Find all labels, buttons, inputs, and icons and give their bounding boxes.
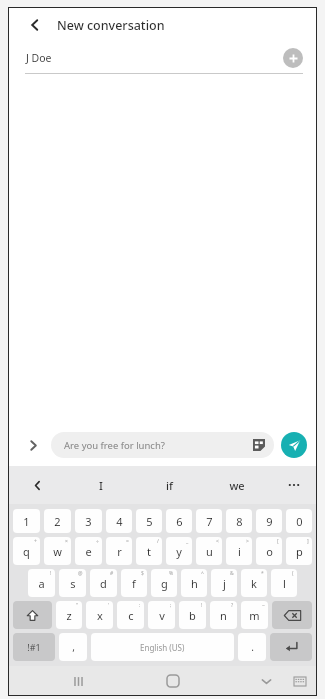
button[interactable]: > [226, 537, 252, 565]
button[interactable]: 8 [226, 509, 252, 533]
staticText: , [72, 640, 75, 654]
button[interactable]: [ [256, 537, 282, 565]
button[interactable]: Hide keyboard [251, 666, 281, 696]
staticText: e [85, 544, 92, 559]
staticText: ' [108, 602, 110, 609]
button[interactable]: I [66, 466, 135, 504]
staticText: I [99, 478, 103, 493]
button[interactable]: ! [28, 569, 55, 597]
button[interactable]: 6 [166, 509, 192, 533]
staticText: : [139, 602, 141, 609]
button[interactable]: ' [86, 601, 113, 629]
button[interactable]: 7 [196, 509, 222, 533]
staticText: !#1 [27, 641, 41, 653]
staticText: t [147, 544, 151, 559]
button[interactable]: Stickers [251, 437, 267, 453]
button[interactable]: / [136, 537, 162, 565]
button[interactable]: ÷ [75, 537, 102, 565]
button[interactable]: Are you free for lunch? [51, 432, 274, 458]
staticText: r [117, 544, 122, 559]
button[interactable]: English (US) [91, 633, 234, 661]
button[interactable]: ] [286, 537, 312, 565]
staticText: d [100, 576, 107, 591]
button[interactable]: Back [22, 12, 48, 38]
staticText: m [249, 608, 260, 623]
staticText: + [34, 538, 37, 545]
button[interactable]: < [196, 537, 222, 565]
button[interactable]: $ [121, 569, 147, 597]
staticText: & [230, 570, 234, 577]
button[interactable]: 5 [136, 509, 162, 533]
staticText: 7 [206, 514, 213, 529]
staticText: ] [307, 538, 309, 545]
staticText: ! [201, 602, 203, 609]
staticText: ÷ [96, 538, 99, 545]
button[interactable]: , [59, 633, 87, 661]
staticText: 3 [85, 514, 92, 529]
button[interactable]: # [90, 569, 117, 597]
staticText: . [251, 640, 254, 654]
staticText: 4 [116, 514, 123, 529]
staticText: 2 [54, 514, 61, 529]
button[interactable]: Add recipient [283, 48, 303, 68]
staticText: ? [231, 602, 234, 609]
staticText: = [126, 538, 129, 545]
staticText: f [132, 576, 136, 591]
button[interactable]: Previous suggestions [8, 466, 66, 504]
button[interactable]: ; [148, 601, 175, 629]
button[interactable]: × [44, 537, 71, 565]
staticText: < [216, 538, 219, 545]
staticText: / [157, 538, 159, 545]
staticText: h [191, 576, 198, 591]
button[interactable]: _ [166, 537, 192, 565]
staticText: 1 [23, 514, 30, 529]
button[interactable]: ( [271, 569, 297, 597]
staticText: Are you free for lunch? [64, 439, 165, 452]
button[interactable]: !#1 [13, 633, 55, 661]
button[interactable]: Send [281, 432, 307, 458]
button[interactable]: = [106, 537, 132, 565]
button[interactable]: Shift [13, 601, 52, 629]
button[interactable]: if [135, 466, 203, 504]
button[interactable]: Change keyboard [287, 668, 313, 694]
button[interactable]: More suggestions [271, 466, 317, 504]
button[interactable]: 1 [13, 509, 40, 533]
staticText: % [169, 570, 174, 577]
staticText: _ [186, 538, 189, 545]
button[interactable]: ? [210, 601, 237, 629]
staticText: ~ [262, 602, 265, 609]
staticText: z [66, 608, 72, 623]
staticText: u [206, 544, 213, 559]
staticText: ^ [201, 570, 204, 577]
button[interactable]: Backspace [272, 601, 312, 629]
staticText: 5 [146, 514, 153, 529]
button[interactable]: Home [156, 666, 190, 696]
button[interactable]: ! [179, 601, 206, 629]
button[interactable]: 9 [256, 509, 282, 533]
button[interactable]: ~ [241, 601, 268, 629]
button[interactable]: % [151, 569, 177, 597]
button[interactable]: 2 [44, 509, 71, 533]
staticText: > [246, 538, 249, 545]
button[interactable]: * [241, 569, 267, 597]
button[interactable]: Recents [61, 666, 95, 696]
staticText: [ [277, 538, 279, 545]
button[interactable]: @ [59, 569, 86, 597]
button[interactable]: Enter [270, 633, 312, 661]
button[interactable]: & [211, 569, 237, 597]
staticText: v [159, 608, 165, 623]
button[interactable]: we [203, 466, 271, 504]
staticText: j [223, 576, 226, 591]
button[interactable]: 4 [106, 509, 132, 533]
button[interactable]: . [238, 633, 266, 661]
button[interactable]: : [117, 601, 144, 629]
staticText: ( [292, 570, 294, 577]
staticText: l [283, 576, 286, 591]
button[interactable]: ^ [181, 569, 207, 597]
button[interactable]: + [13, 537, 40, 565]
button[interactable]: " [56, 601, 82, 629]
button[interactable]: 0 [286, 509, 312, 533]
staticText: ; [170, 602, 172, 609]
button[interactable]: 3 [75, 509, 102, 533]
button[interactable]: More options [21, 433, 45, 457]
